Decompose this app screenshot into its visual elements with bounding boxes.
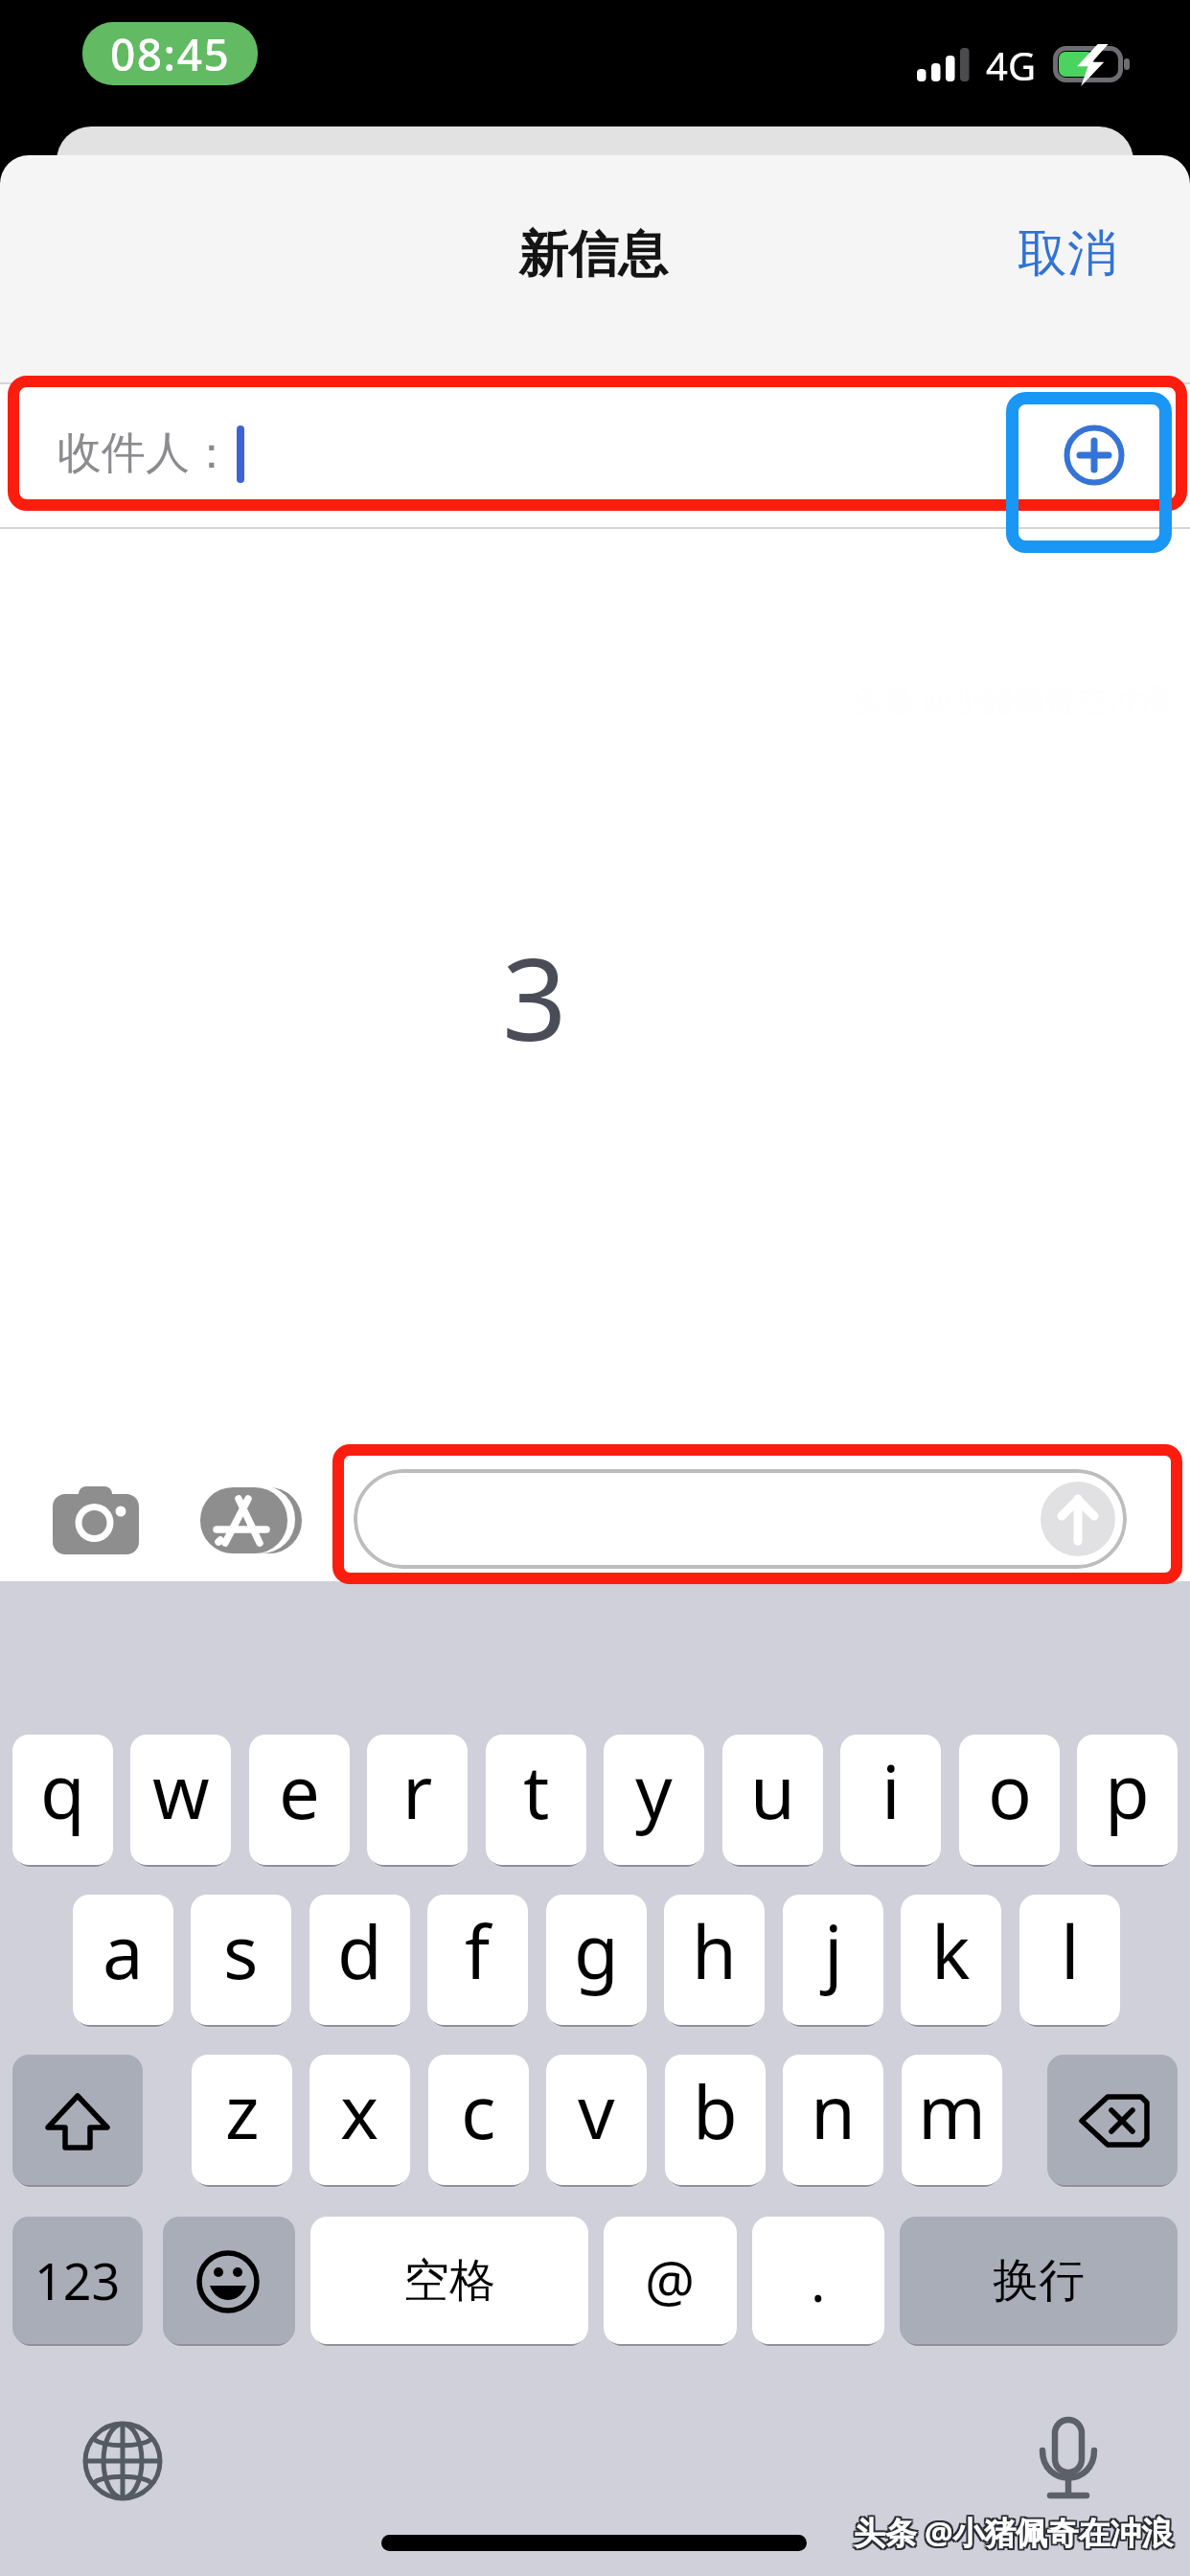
- staticText: u: [750, 1741, 795, 1841]
- staticText: e: [279, 1741, 320, 1841]
- staticText: q: [40, 1741, 85, 1841]
- staticText: 换行: [993, 2252, 1085, 2310]
- staticText: h: [692, 1901, 737, 2001]
- button[interactable]: m: [902, 2055, 1002, 2185]
- button[interactable]: n: [783, 2055, 883, 2185]
- staticText: n: [811, 2061, 856, 2161]
- staticText: 123: [34, 2246, 121, 2314]
- button[interactable]: r: [367, 1735, 468, 1865]
- button[interactable]: 123: [12, 2217, 143, 2344]
- button[interactable]: App Store: [200, 1485, 304, 1553]
- staticText: w: [152, 1741, 210, 1841]
- staticText: 新信息: [518, 223, 668, 287]
- button[interactable]: s: [191, 1895, 291, 2025]
- button[interactable]: Send: [354, 1469, 1127, 1569]
- button[interactable]: l: [1019, 1895, 1120, 2025]
- button[interactable]: d: [309, 1895, 410, 2025]
- staticText: x: [340, 2061, 379, 2161]
- staticText: 头条 @小猪佩奇在冲浪: [854, 2511, 1174, 2554]
- button[interactable]: z: [192, 2055, 292, 2185]
- staticText: i: [881, 1741, 901, 1841]
- staticText: @: [645, 2242, 696, 2318]
- staticText: k: [931, 1901, 971, 2001]
- staticText: r: [402, 1741, 433, 1841]
- button[interactable]: g: [546, 1895, 647, 2025]
- staticText: c: [461, 2061, 496, 2161]
- button[interactable]: p: [1077, 1735, 1178, 1865]
- button[interactable]: k: [901, 1895, 1001, 2025]
- button[interactable]: 空格: [310, 2217, 588, 2344]
- staticText: g: [574, 1901, 619, 2001]
- staticText: 08:45: [110, 24, 231, 84]
- button[interactable]: i: [840, 1735, 941, 1865]
- button[interactable]: Send: [1041, 1482, 1115, 1556]
- button[interactable]: f: [427, 1895, 528, 2025]
- staticText: y: [635, 1741, 673, 1841]
- button[interactable]: e: [249, 1735, 350, 1865]
- button[interactable]: u: [722, 1735, 823, 1865]
- staticText: j: [824, 1901, 843, 2001]
- staticText: s: [223, 1901, 259, 2001]
- button[interactable]: Dictation: [1039, 2414, 1098, 2502]
- button[interactable]: h: [664, 1895, 765, 2025]
- staticText: .: [811, 2242, 826, 2318]
- staticText: 4G: [986, 39, 1036, 91]
- button[interactable]: .: [752, 2217, 884, 2344]
- staticText: 头条 @小猪佩奇在冲浪: [852, 2511, 1172, 2554]
- staticText: 取消: [1018, 222, 1117, 286]
- button[interactable]: c: [428, 2055, 529, 2185]
- staticText: 3: [502, 920, 567, 1074]
- button[interactable]: Camera: [53, 1486, 139, 1554]
- button[interactable]: y: [604, 1735, 704, 1865]
- button[interactable]: Add contact: [1054, 415, 1134, 495]
- button[interactable]: 收件人：: [0, 384, 1190, 527]
- staticText: m: [918, 2061, 987, 2161]
- staticText: 头条 @小猪佩奇在冲浪: [854, 2509, 1174, 2552]
- staticText: t: [523, 1741, 550, 1841]
- button[interactable]: w: [130, 1735, 231, 1865]
- button[interactable]: x: [309, 2055, 410, 2185]
- staticText: 空格: [403, 2252, 495, 2310]
- staticText: b: [693, 2061, 738, 2161]
- staticText: l: [1061, 1901, 1080, 2001]
- staticText: 头条 @小猪佩奇在冲浪: [854, 2513, 1174, 2556]
- staticText: f: [465, 1901, 491, 2001]
- staticText: 收件人：: [57, 425, 234, 481]
- staticText: a: [103, 1901, 144, 2001]
- button[interactable]: 取消: [983, 213, 1152, 295]
- button[interactable]: b: [665, 2055, 766, 2185]
- button[interactable]: t: [486, 1735, 586, 1865]
- staticText: z: [225, 2061, 260, 2161]
- staticText: 头条 @小猪佩奇在冲浪: [852, 2513, 1172, 2556]
- button[interactable]: q: [12, 1735, 113, 1865]
- button[interactable]: Backspace: [1047, 2055, 1178, 2185]
- button[interactable]: j: [783, 1895, 883, 2025]
- staticText: o: [988, 1741, 1032, 1841]
- staticText: 头条 @小猪佩奇在冲浪: [852, 2509, 1172, 2552]
- button[interactable]: Switch keyboard: [82, 2421, 163, 2501]
- staticText: 头条 @小猪佩奇在冲浪: [856, 2509, 1176, 2552]
- button[interactable]: 换行: [900, 2217, 1178, 2344]
- button[interactable]: Emoji: [163, 2217, 295, 2344]
- staticText: 头条 @小猪佩奇在冲浪: [856, 2513, 1176, 2556]
- staticText: v: [578, 2061, 615, 2161]
- button[interactable]: o: [959, 1735, 1060, 1865]
- button[interactable]: Shift: [12, 2055, 143, 2185]
- staticText: 头条 @小猪佩奇在冲浪: [856, 2511, 1176, 2554]
- staticText: p: [1105, 1741, 1150, 1841]
- staticText: d: [337, 1901, 382, 2001]
- button[interactable]: a: [73, 1895, 173, 2025]
- button[interactable]: @: [604, 2217, 737, 2344]
- button[interactable]: v: [546, 2055, 647, 2185]
